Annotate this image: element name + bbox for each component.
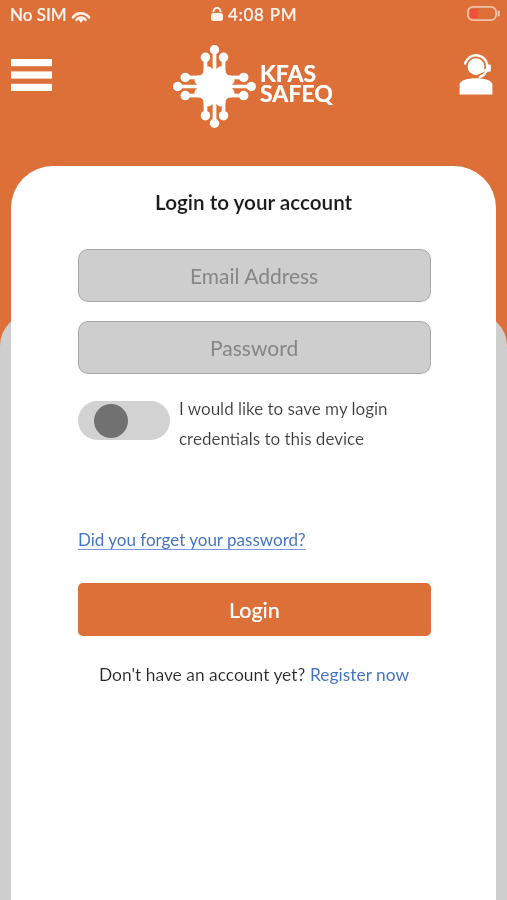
staticText: Password — [210, 335, 299, 360]
button[interactable]: Password — [78, 321, 431, 374]
staticText: SAFEQ — [260, 79, 333, 107]
button[interactable]: Email Address — [78, 249, 431, 302]
button[interactable]: Customer support — [451, 46, 503, 103]
button[interactable]: Did you forget your password? — [78, 529, 306, 549]
staticText: 4:08 PM — [228, 4, 298, 24]
staticText: Login to your account — [155, 190, 353, 215]
button[interactable]: Open navigation menu — [0, 46, 62, 104]
button[interactable]: Register now — [310, 664, 410, 685]
staticText: Register now — [310, 664, 410, 685]
staticText: KFAS — [260, 59, 317, 87]
staticText: I would like to save my login credential… — [179, 398, 431, 448]
staticText: Login — [229, 597, 280, 623]
staticText: Did you forget your password? — [78, 529, 306, 549]
staticText: Email Address — [190, 263, 319, 288]
staticText: Don't have an account yet? — [99, 664, 310, 685]
button[interactable]: Login — [78, 583, 431, 636]
staticText: No SIM — [10, 4, 67, 24]
button[interactable]: I would like to save my login credential… — [78, 398, 431, 458]
